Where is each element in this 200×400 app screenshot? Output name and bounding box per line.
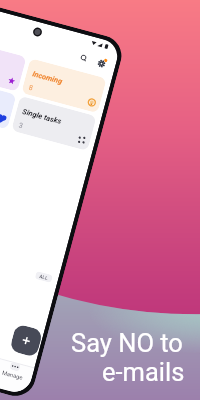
button[interactable]: ALL <box>35 271 53 283</box>
staticText: e-mails <box>102 357 185 387</box>
button[interactable]: Single tasks <box>11 96 97 151</box>
staticText: Incoming <box>31 69 64 86</box>
button[interactable] <box>0 77 17 129</box>
staticText: Manage <box>1 370 23 382</box>
staticText: ALL <box>39 273 49 281</box>
staticText: Say NO to <box>71 328 183 358</box>
button[interactable]: Add task <box>9 323 43 358</box>
staticText: 8 <box>28 83 35 92</box>
button[interactable]: Settings <box>94 56 109 71</box>
button[interactable]: Incoming <box>21 58 107 113</box>
staticText: 3 <box>18 120 25 129</box>
staticText: Single tasks <box>21 107 63 126</box>
button[interactable] <box>0 39 27 92</box>
button[interactable]: Manage <box>0 359 31 388</box>
button[interactable]: Search <box>77 52 90 65</box>
